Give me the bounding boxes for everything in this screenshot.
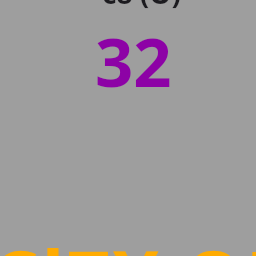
button[interactable]: 32 [95, 15, 172, 106]
button[interactable]: c8 (O) [102, 0, 181, 12]
button[interactable]: ClTY OF [0, 226, 256, 256]
